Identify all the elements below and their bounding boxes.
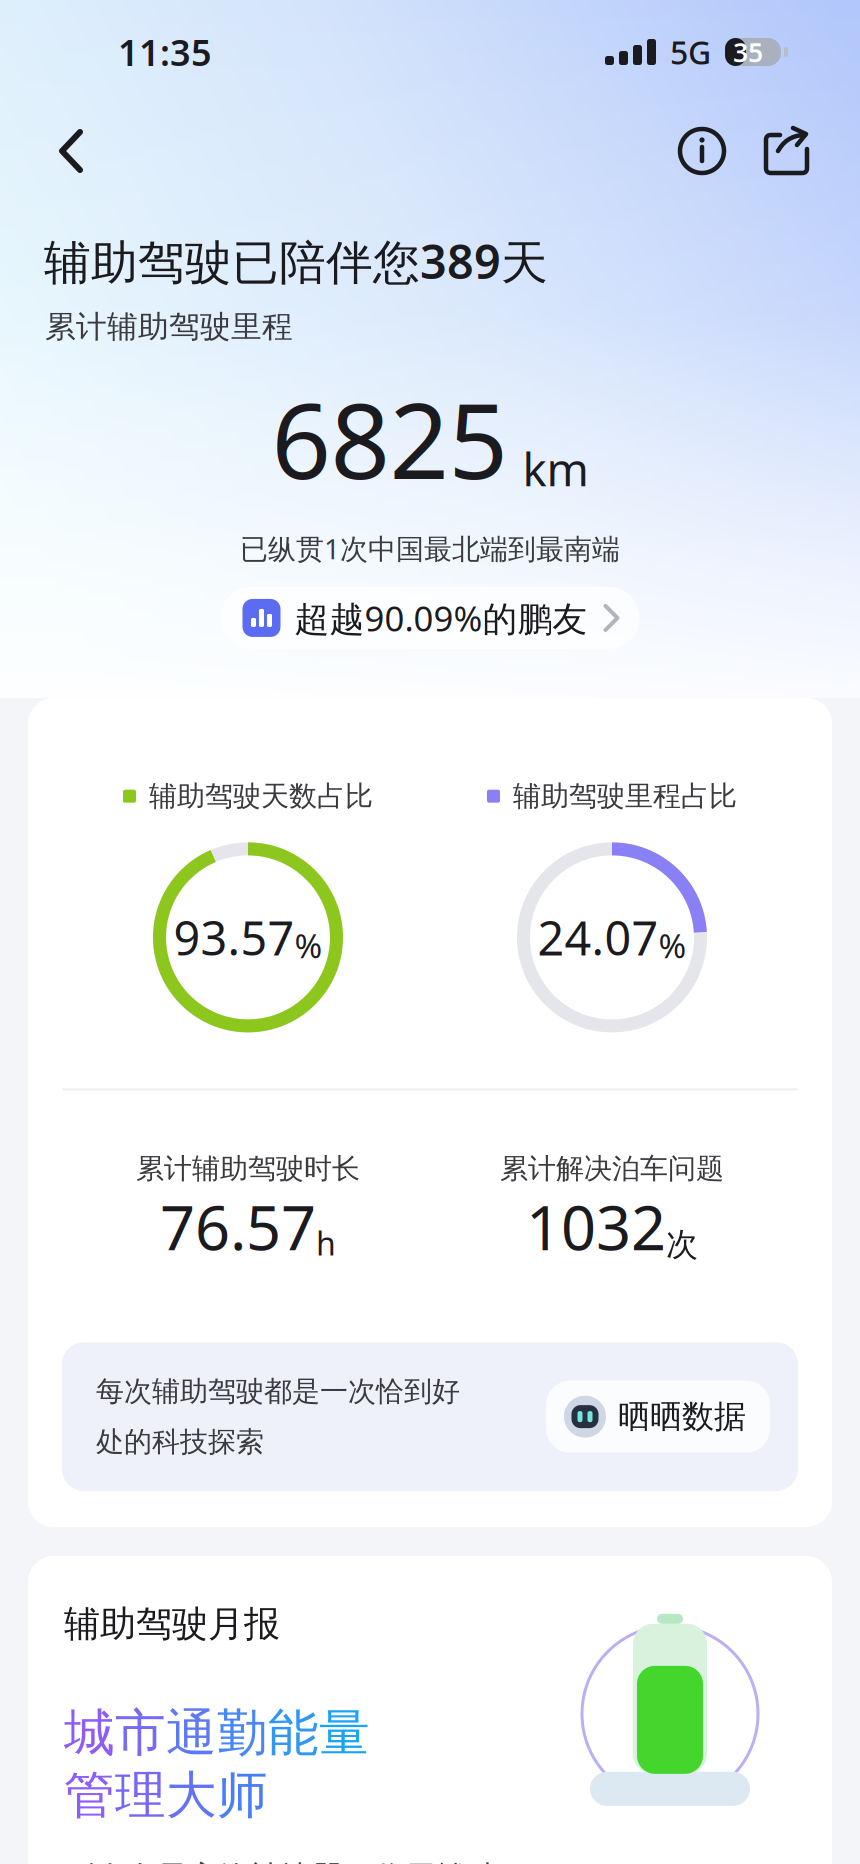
staticText: 管 xyxy=(64,1764,115,1826)
staticText: 勤 xyxy=(217,1702,268,1764)
staticText: 93.57 xyxy=(173,906,294,968)
staticText: 24.07 xyxy=(537,906,658,968)
staticText: km xyxy=(522,438,588,499)
staticText: 超越90.09%的鹏友 xyxy=(294,595,587,641)
button[interactable]: Back xyxy=(28,106,114,196)
staticText: 能 xyxy=(268,1702,319,1764)
staticText: 城 xyxy=(64,1702,115,1764)
staticText: 6825 xyxy=(271,370,507,508)
staticText: 76.57 xyxy=(160,1186,316,1267)
staticText: 师 xyxy=(217,1764,268,1826)
staticText: 大 xyxy=(166,1764,217,1826)
staticText: h xyxy=(316,1222,336,1264)
staticText: 量 xyxy=(319,1702,370,1764)
staticText: 辅助驾驶已陪伴您389天 xyxy=(44,230,548,292)
staticText: % xyxy=(658,923,686,967)
staticText: 每次辅助驾驶都是一次恰到好 xyxy=(96,1374,460,1409)
button[interactable]: Share xyxy=(744,106,828,196)
staticText: 辅助驾驶天数占比 xyxy=(149,779,373,813)
staticText: 理 xyxy=(115,1764,166,1826)
staticText: 累计辅助驾驶里程 xyxy=(45,308,293,346)
staticText: 累计辅助驾驶时长 xyxy=(136,1151,360,1186)
button[interactable]: 晒晒数据 xyxy=(546,1381,770,1453)
button[interactable]: Info xyxy=(660,106,744,196)
staticText: 通 xyxy=(166,1702,217,1764)
button[interactable]: 超越90.09%的鹏友 xyxy=(220,587,639,649)
staticText: 别人在早高峰被堵哭，你用辅助 xyxy=(64,1858,498,1864)
staticText: 11:35 xyxy=(118,28,212,76)
staticText: % xyxy=(294,923,322,967)
staticText: 累计解决泊车问题 xyxy=(500,1151,724,1186)
staticText: 处的科技探索 xyxy=(96,1425,264,1459)
staticText: 已纵贯1次中国最北端到最南端 xyxy=(240,530,620,567)
staticText: 晒晒数据 xyxy=(618,1397,746,1436)
staticText: 次 xyxy=(666,1225,698,1264)
staticText: 辅助驾驶里程占比 xyxy=(513,779,737,813)
staticText: 辅助驾驶月报 xyxy=(64,1602,280,1646)
staticText: 5G xyxy=(670,31,711,73)
staticText: 35 xyxy=(733,34,763,70)
staticText: 市 xyxy=(115,1702,166,1764)
staticText: 1032 xyxy=(526,1186,666,1267)
